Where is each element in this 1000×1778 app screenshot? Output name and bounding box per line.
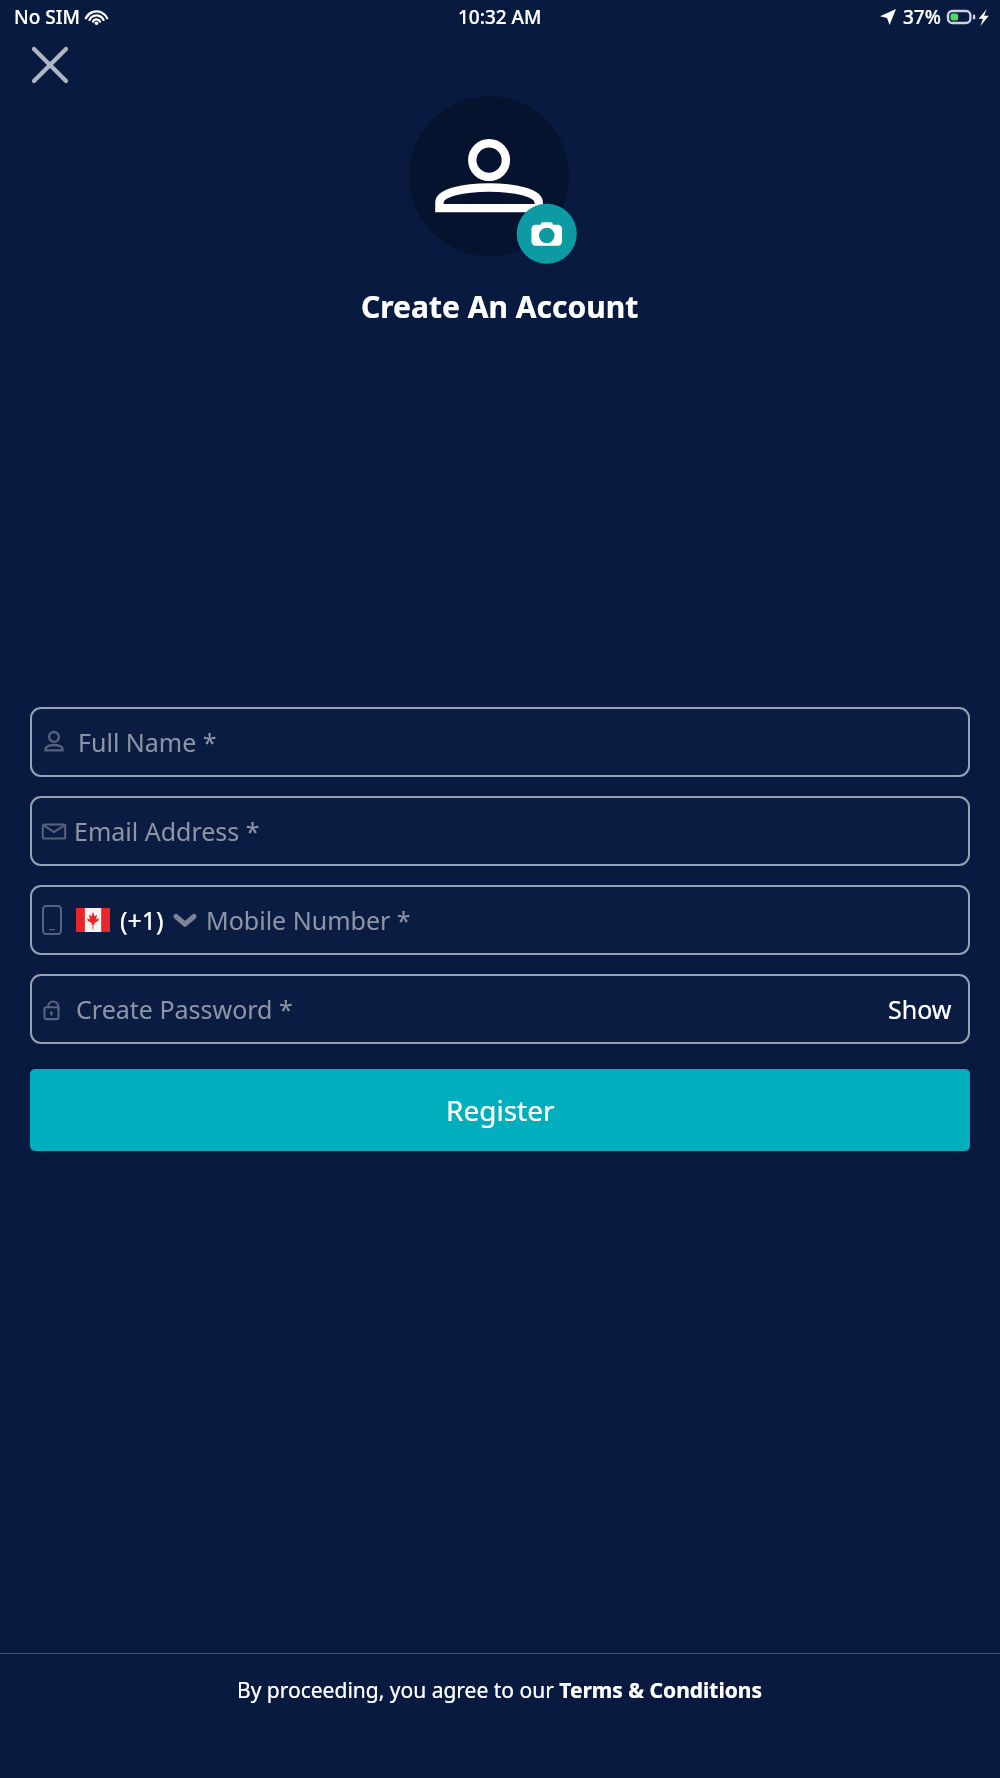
staticText: Register — [446, 1091, 555, 1129]
button[interactable]: Change profile photo — [409, 96, 591, 278]
button[interactable]: By proceeding, you agree to our Terms & … — [0, 1654, 1000, 1726]
button[interactable]: Register — [30, 1069, 970, 1151]
staticText: Email Address * — [74, 814, 260, 848]
staticText: 10:32 AM — [458, 4, 542, 30]
button[interactable]: Create Password * — [30, 974, 970, 1044]
staticText: Mobile Number * — [206, 903, 411, 937]
button[interactable]: Show — [888, 992, 952, 1026]
staticText: Show — [888, 992, 952, 1026]
staticText: Create Password * — [76, 992, 293, 1026]
staticText: Create An Account — [361, 286, 639, 327]
staticText: By proceeding, you agree to our Terms & … — [237, 1676, 763, 1705]
staticText: (+1) — [120, 903, 164, 937]
staticText: No SIM — [14, 4, 80, 30]
button[interactable]: Full Name * — [30, 707, 970, 777]
button[interactable]: Select country code — [174, 913, 196, 927]
button[interactable]: (+1) — [30, 885, 970, 955]
button[interactable]: Close — [12, 34, 88, 96]
staticText: Full Name * — [78, 725, 217, 759]
staticText: 37% — [903, 4, 941, 30]
button[interactable]: Email Address * — [30, 796, 970, 866]
